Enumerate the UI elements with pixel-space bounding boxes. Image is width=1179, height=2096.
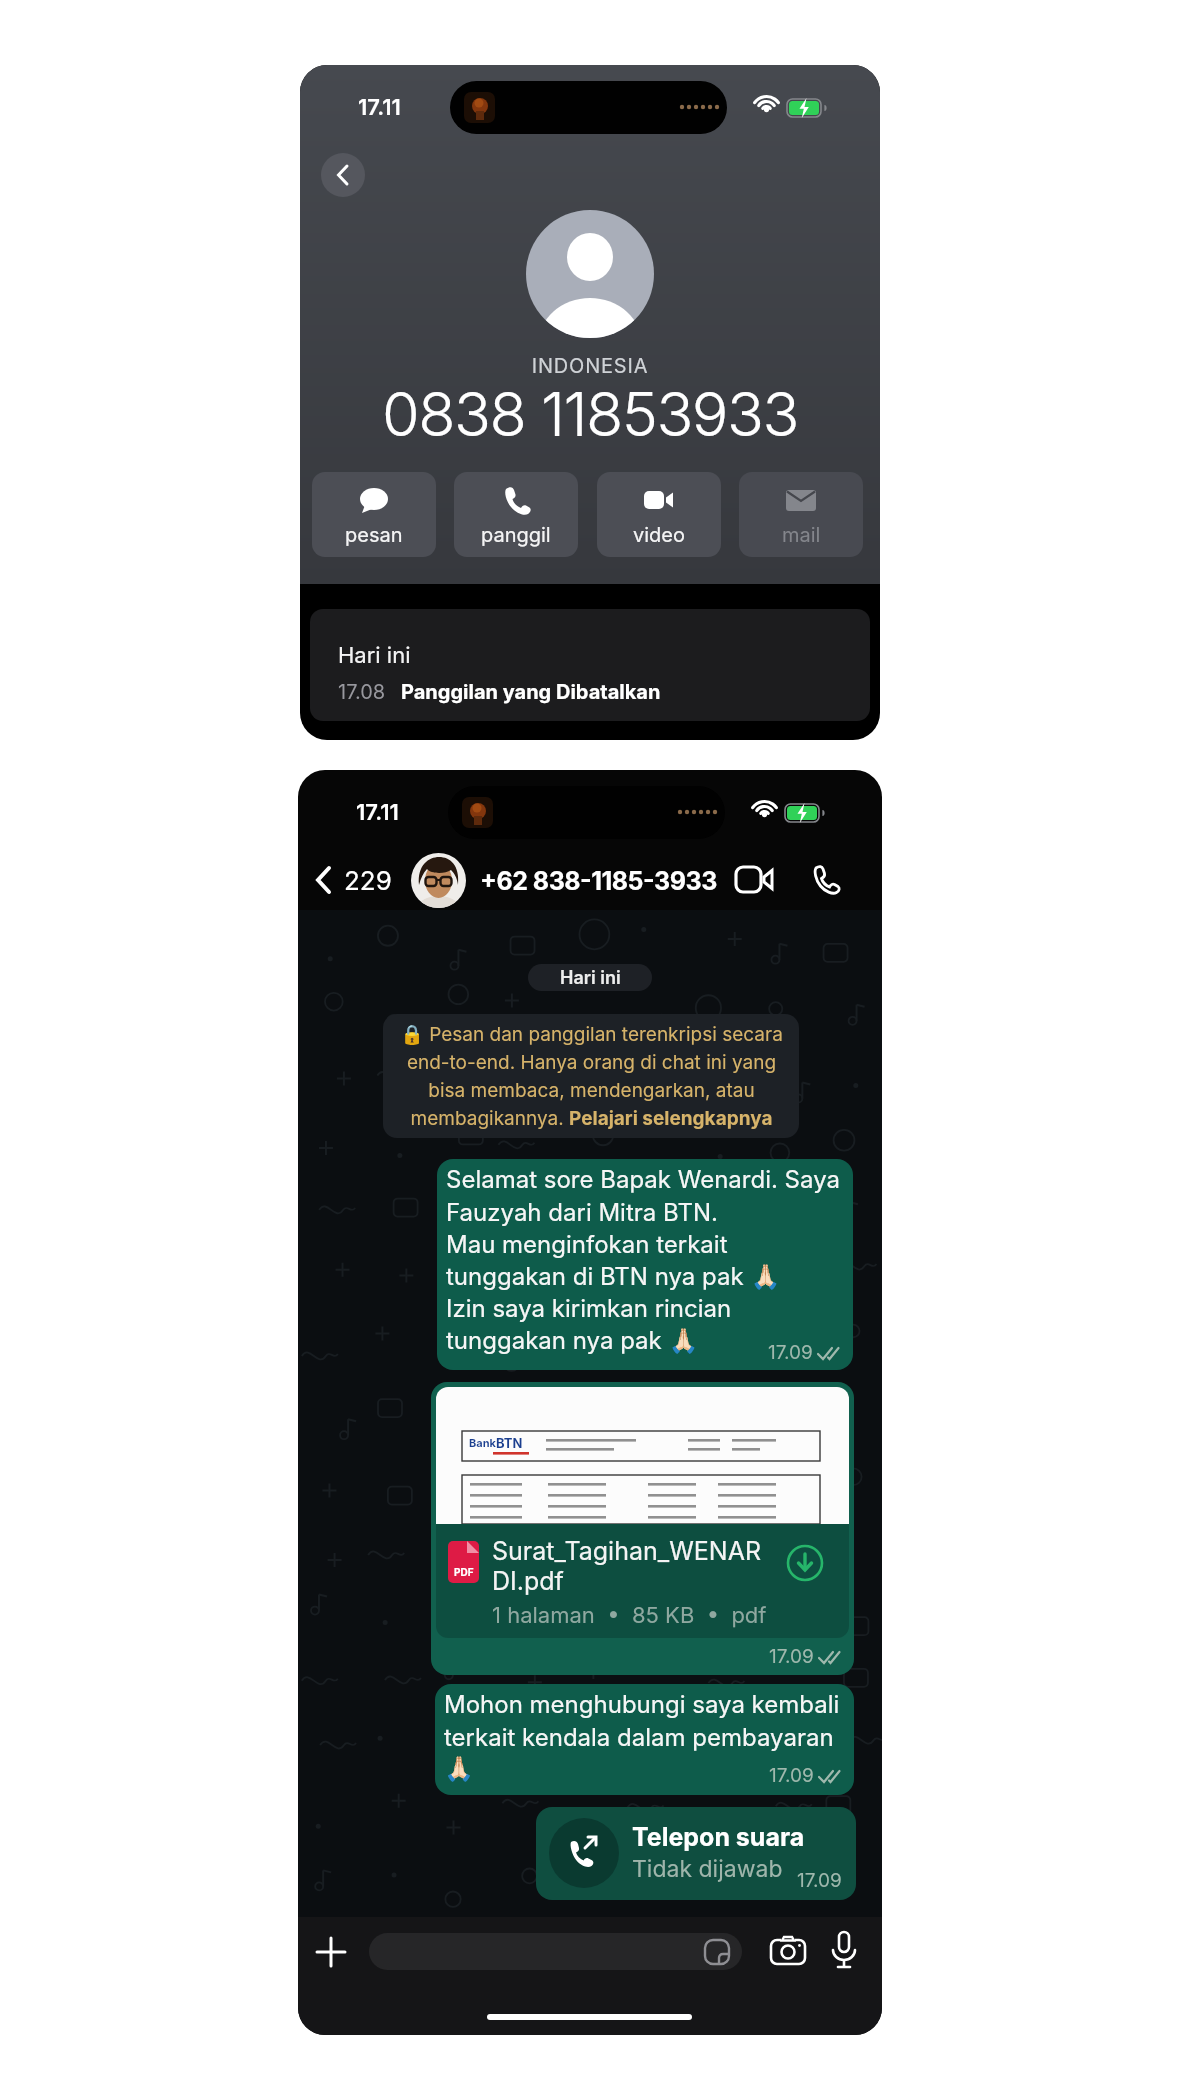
staticText: panggil (481, 523, 551, 547)
button[interactable]: Hari ini (310, 609, 870, 721)
staticText: 17.09 (797, 1869, 842, 1892)
staticText: 229 (344, 865, 392, 896)
staticText: INDONESIA (300, 354, 880, 378)
staticText: Hari ini (338, 642, 411, 669)
staticText: Mohon menghubungi saya kembali terkait k… (444, 1690, 840, 1783)
staticText: Tidak dijawab (632, 1855, 783, 1883)
staticText: 17.11 (356, 799, 399, 826)
staticText: mail (782, 523, 821, 547)
button[interactable] (369, 1933, 742, 1970)
button[interactable] (736, 866, 774, 894)
staticText: 17.08 (338, 680, 386, 704)
staticText: Bank (469, 1436, 496, 1449)
button[interactable] (321, 153, 365, 197)
staticText: video (633, 523, 685, 547)
button[interactable]: Selamat sore Bapak Wenardi. Saya Fauzyah… (437, 1159, 853, 1370)
button[interactable] (831, 1932, 857, 1972)
button[interactable]: 🔒 Pesan dan panggilan terenkripsi secara… (383, 1014, 799, 1138)
staticText: Selamat sore Bapak Wenardi. Saya Fauzyah… (446, 1165, 840, 1354)
button[interactable]: mail (739, 472, 863, 557)
staticText: Panggilan yang Dibatalkan (401, 680, 661, 704)
staticText: 17.09 (769, 1764, 814, 1787)
staticText: PDF (454, 1566, 474, 1578)
staticText: Hari ini (560, 967, 621, 989)
button[interactable]: panggil (454, 472, 578, 557)
button[interactable] (315, 1936, 347, 1968)
staticText: 17.09 (768, 1341, 813, 1364)
staticText: pesan (345, 523, 403, 547)
button[interactable] (810, 864, 842, 896)
button[interactable]: Telepon suara (536, 1807, 856, 1900)
button[interactable]: +62 838-1185-3933 (480, 866, 717, 896)
button[interactable]: Bank (431, 1382, 854, 1675)
staticText: 1 halaman • 85 KB • pdf (492, 1602, 767, 1629)
staticText: BTN (496, 1435, 523, 1451)
staticText: Telepon suara (632, 1822, 805, 1852)
staticText: DI.pdf (492, 1566, 564, 1596)
button[interactable] (411, 853, 466, 908)
button[interactable]: pesan (312, 472, 436, 557)
button[interactable]: Mohon menghubungi saya kembali terkait k… (435, 1684, 854, 1795)
button[interactable]: 229 (314, 858, 392, 902)
staticText: 0838 11853933 (300, 377, 880, 451)
staticText: 🔒 Pesan dan panggilan terenkripsi secara… (400, 1023, 783, 1130)
button[interactable]: video (597, 472, 721, 557)
staticText: Surat_Tagihan_WENAR (492, 1536, 761, 1566)
staticText: 17.09 (769, 1645, 814, 1668)
button[interactable] (771, 1936, 805, 1966)
staticText: 17.11 (358, 94, 401, 121)
